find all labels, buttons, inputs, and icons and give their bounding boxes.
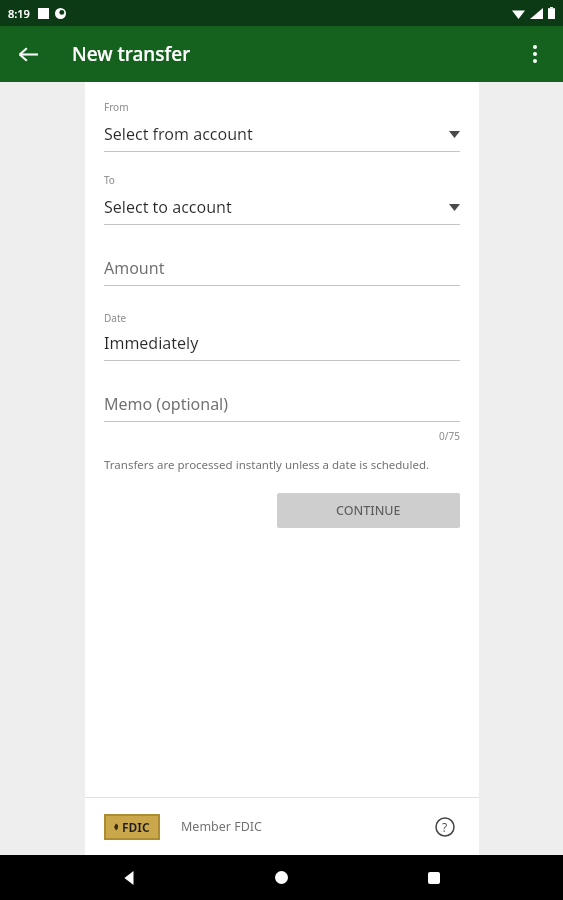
staticText: New transfer — [72, 41, 191, 67]
staticText: To — [104, 173, 115, 187]
staticText: FDIC — [122, 819, 150, 835]
button[interactable]: Help — [430, 812, 460, 842]
button[interactable]: Memo (optional) — [104, 393, 460, 422]
button[interactable]: CONTINUE — [277, 493, 460, 528]
staticText: Immediately — [104, 332, 199, 354]
staticText: Select to account — [104, 196, 232, 218]
staticText: Amount — [104, 257, 165, 279]
staticText: 0/75 — [439, 429, 460, 443]
staticText: 8:19 — [8, 6, 30, 21]
button[interactable]: Home — [259, 855, 304, 900]
button[interactable]: Back — [107, 855, 152, 900]
button[interactable]: To — [104, 173, 460, 225]
button[interactable]: Recents — [411, 855, 456, 900]
button[interactable]: From — [104, 100, 460, 152]
staticText: Select from account — [104, 123, 253, 145]
button[interactable]: Back — [0, 26, 56, 82]
staticText: Transfers are processed instantly unless… — [104, 457, 430, 473]
staticText: Date — [104, 311, 127, 325]
staticText: From — [104, 100, 129, 114]
button[interactable]: Amount — [104, 257, 460, 286]
staticText: ? — [442, 819, 448, 835]
button[interactable]: Date — [104, 311, 460, 361]
button[interactable]: More options — [507, 26, 563, 82]
staticText: CONTINUE — [336, 502, 401, 519]
staticText: Memo (optional) — [104, 393, 229, 415]
staticText: Member FDIC — [181, 818, 262, 835]
